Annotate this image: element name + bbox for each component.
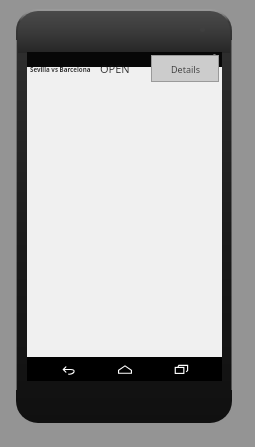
staticText: OPEN	[100, 61, 130, 76]
button[interactable]: Sevilla vs Barcelona	[29, 65, 91, 73]
button[interactable]: Back	[53, 357, 83, 381]
staticText: Details	[171, 63, 200, 75]
button[interactable]: Home	[110, 357, 140, 381]
button[interactable]: Recent apps	[166, 357, 196, 381]
button[interactable]: Details	[151, 55, 219, 82]
